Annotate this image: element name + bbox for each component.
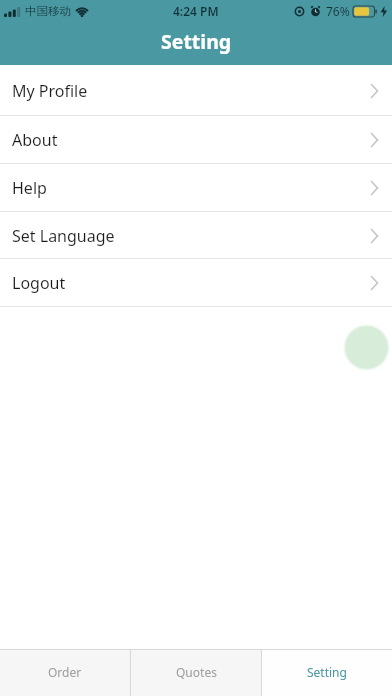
staticText: Setting — [307, 664, 347, 680]
button[interactable] — [343, 324, 390, 371]
staticText: My Profile — [12, 80, 88, 102]
staticText: Order — [48, 664, 82, 680]
button[interactable]: Order — [0, 650, 130, 696]
staticText: 中国移动 — [25, 4, 71, 18]
staticText: Logout — [12, 272, 66, 294]
button[interactable]: Logout — [0, 259, 392, 307]
staticText: 76% — [326, 3, 350, 19]
button[interactable]: Setting — [262, 650, 392, 696]
staticText: Quotes — [176, 664, 217, 680]
button[interactable]: About — [0, 116, 392, 164]
button[interactable]: Help — [0, 164, 392, 212]
staticText: Help — [12, 177, 47, 199]
staticText: Set Language — [12, 225, 115, 247]
button[interactable]: Quotes — [131, 650, 261, 696]
button[interactable]: My Profile — [0, 65, 392, 116]
staticText: About — [12, 129, 58, 151]
button[interactable]: Set Language — [0, 212, 392, 259]
staticText: Setting — [161, 28, 232, 55]
staticText: 4:24 PM — [173, 3, 219, 19]
